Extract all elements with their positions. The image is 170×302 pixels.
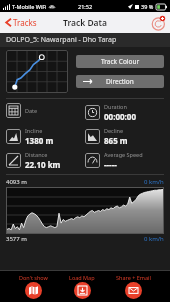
staticText: 21:52 [78, 3, 93, 10]
staticText: DOLPO_5: Nawarpani - Dho Tarap [6, 35, 117, 45]
button[interactable]: Track map preview [6, 50, 68, 93]
button[interactable]: Incline [6, 127, 85, 146]
button[interactable]: Share + Email [114, 274, 153, 299]
staticText: 3577 m [6, 235, 27, 243]
staticText: T-Mobile WiFi [12, 3, 47, 10]
staticText: Direction [106, 77, 134, 86]
staticText: 4093 m [6, 178, 27, 186]
staticText: 0 km/h [144, 178, 164, 186]
button[interactable]: Add track [150, 15, 166, 31]
button[interactable]: Track Colour [76, 55, 164, 68]
staticText: ----- [104, 159, 117, 170]
staticText: Track Data [63, 17, 107, 29]
button[interactable]: Tracks [3, 14, 39, 31]
button[interactable]: Average Speed [85, 151, 164, 170]
staticText: 865 m [104, 135, 128, 146]
button[interactable]: Direction [76, 75, 164, 88]
staticText: Load Map [69, 274, 95, 281]
button[interactable]: Distance [6, 151, 85, 170]
button[interactable]: Date [6, 103, 85, 118]
staticText: Date [25, 107, 38, 114]
button[interactable]: Elevation profile chart [6, 187, 164, 234]
staticText: 39 % [141, 3, 154, 10]
staticText: Don't show [19, 274, 48, 281]
staticText: 22.10 km [25, 159, 61, 170]
button[interactable]: Duration [85, 103, 164, 122]
staticText: Decline [104, 127, 124, 134]
staticText: Duration [104, 103, 127, 110]
button[interactable]: Decline [85, 127, 164, 146]
button[interactable]: Don't show [17, 274, 50, 299]
staticText: Track Colour [101, 57, 140, 66]
staticText: Tracks [13, 17, 37, 28]
staticText: Incline [25, 127, 43, 134]
staticText: 00:00:00 [104, 111, 136, 122]
staticText: Share + Email [116, 274, 151, 281]
staticText: 1380 m [25, 135, 54, 146]
button[interactable]: Load Map [67, 274, 97, 299]
staticText: Average Speed [104, 151, 143, 158]
staticText: Distance [25, 151, 48, 158]
staticText: 0 km/h [144, 235, 164, 243]
